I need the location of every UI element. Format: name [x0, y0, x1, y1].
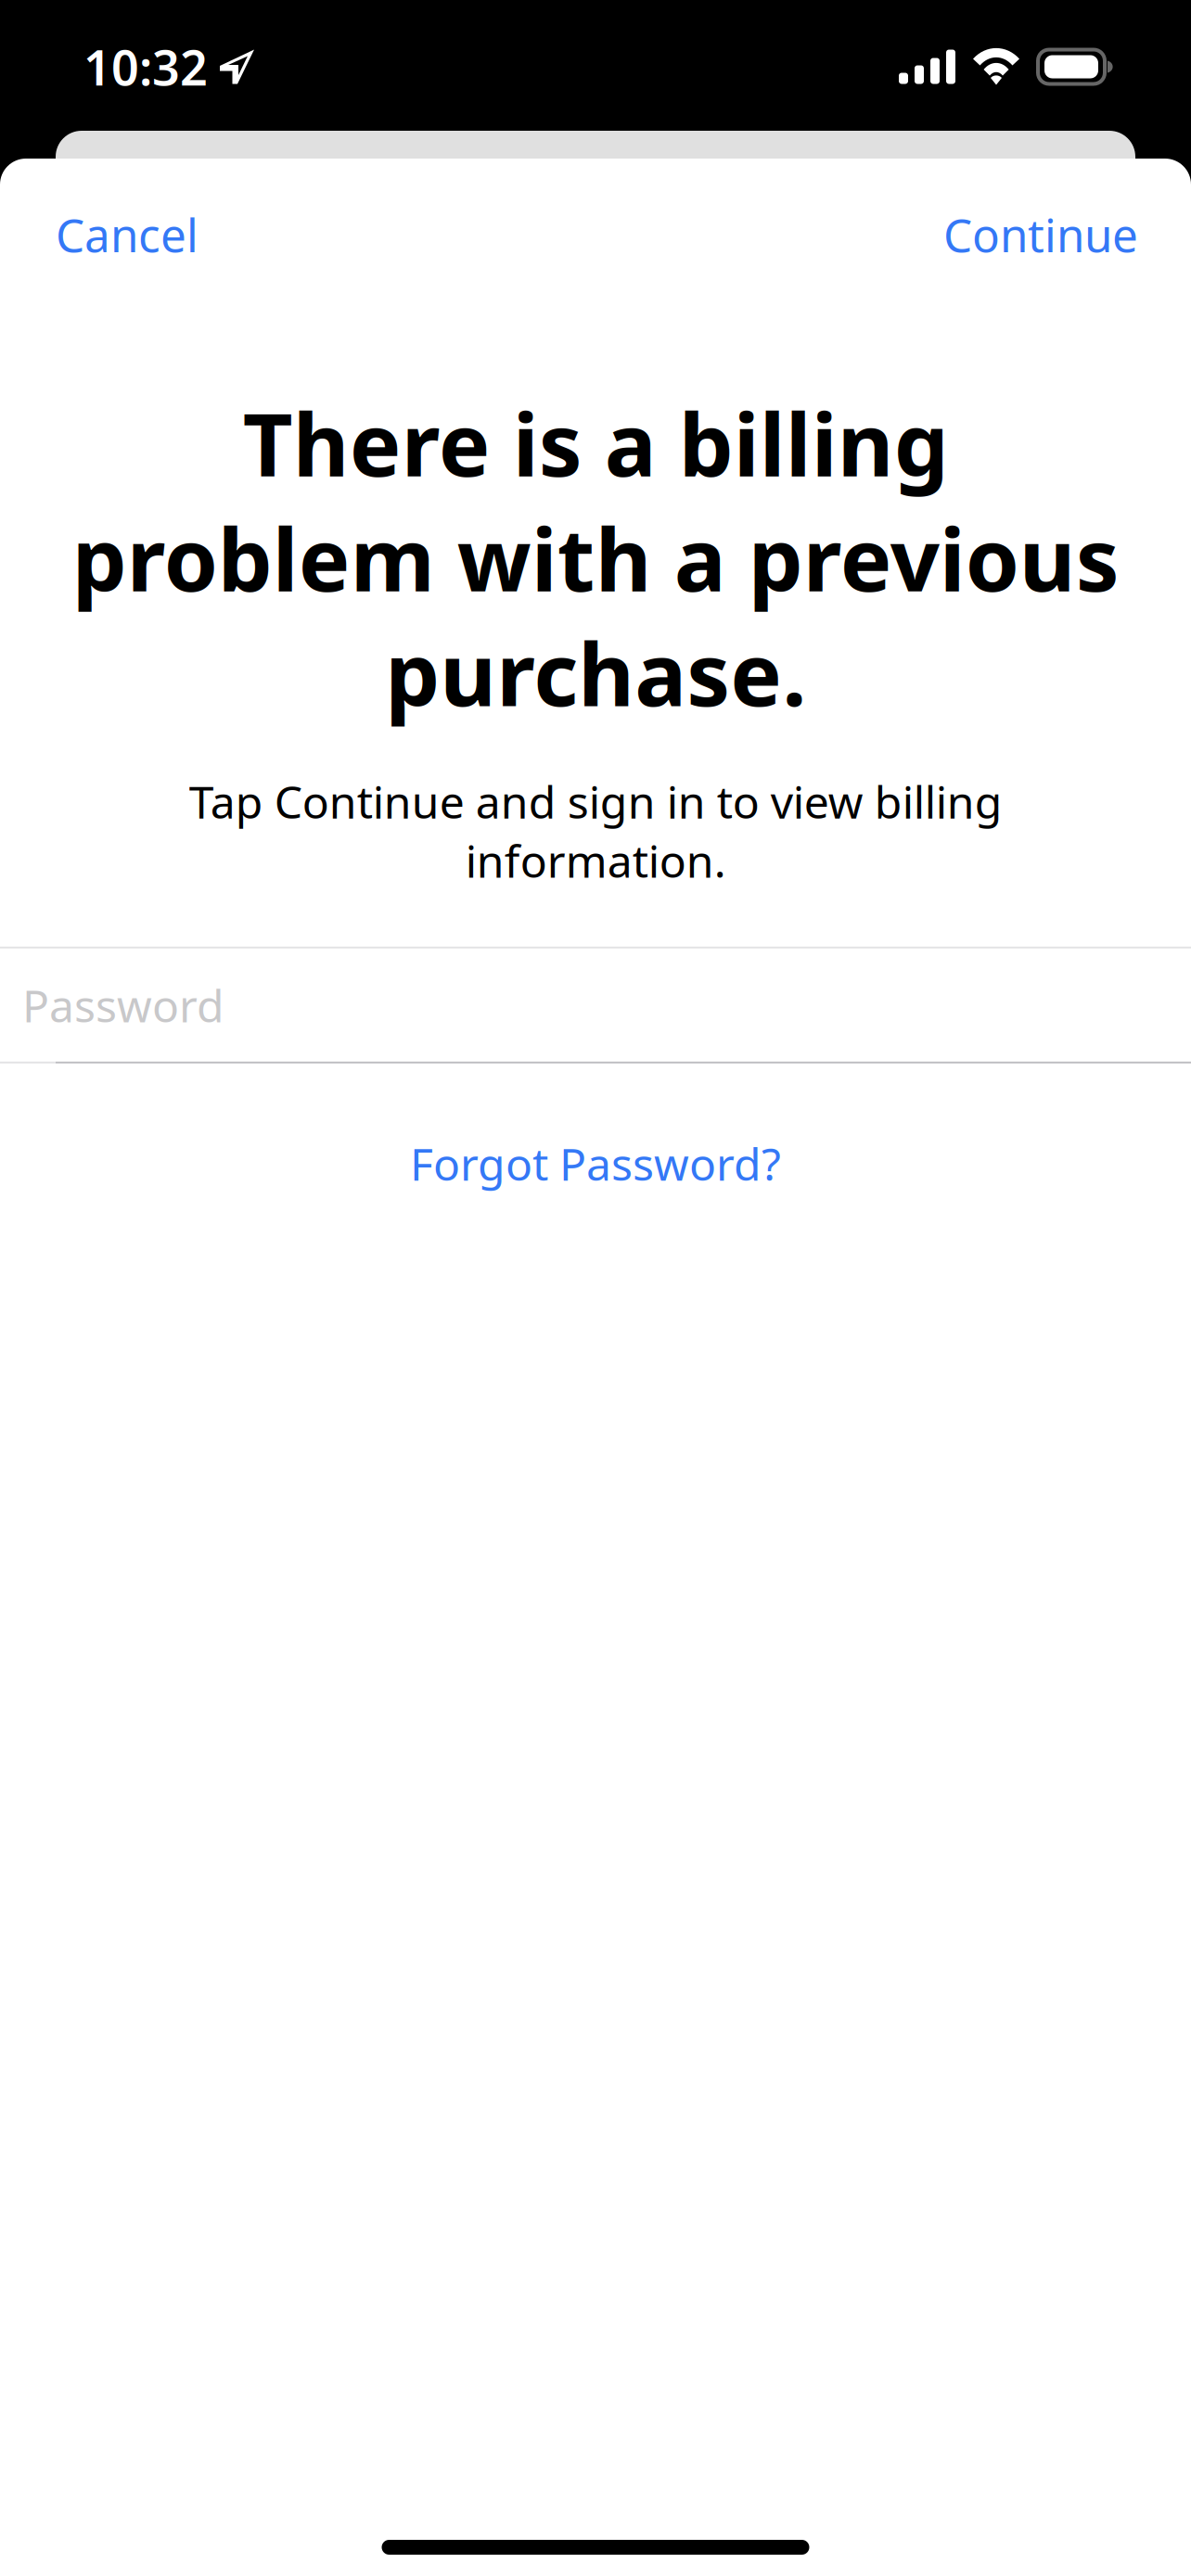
staticText: Password: [22, 976, 224, 1035]
staticText: Forgot Password?: [410, 1134, 781, 1193]
staticText: 10:32: [83, 35, 208, 99]
button[interactable]: Continue: [921, 159, 1160, 289]
button[interactable]: Password: [0, 948, 1191, 1062]
staticText: Cancel: [56, 204, 198, 265]
button[interactable]: Forgot Password?: [0, 1109, 1191, 1218]
staticText: There is a billing problem with a previo…: [72, 385, 1119, 730]
button[interactable]: Cancel: [33, 159, 221, 289]
staticText: Continue: [943, 204, 1138, 265]
staticText: Tap Continue and sign in to view billing…: [189, 772, 1002, 890]
